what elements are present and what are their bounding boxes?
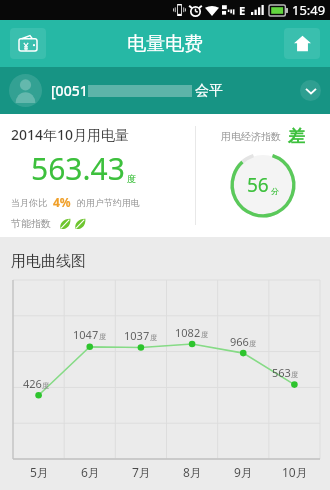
staticText: 1047 [73, 327, 99, 342]
staticText: 563.43 [31, 148, 125, 189]
staticText: 1037 [124, 328, 150, 343]
staticText: 度 [99, 332, 106, 341]
staticText: 7月 [132, 464, 151, 480]
staticText: 1082 [175, 325, 201, 340]
staticText: 差 [288, 126, 305, 147]
staticText: 966 [230, 334, 249, 349]
staticText: 15:49 [292, 1, 326, 19]
staticText: 度 [249, 339, 256, 348]
staticText: 56 [247, 172, 269, 198]
staticText: 的用户节约用电 [77, 197, 140, 208]
staticText: 用电经济指数 [221, 130, 281, 143]
staticText: 6月 [81, 464, 100, 480]
staticText: E [239, 3, 246, 18]
staticText: 8月 [183, 464, 202, 480]
staticText: 分 [271, 186, 279, 196]
button[interactable]: [0051 [0, 67, 330, 114]
staticText: 度 [42, 381, 49, 390]
staticText: 用电曲线图 [11, 252, 86, 271]
staticText: 563 [272, 365, 291, 380]
staticText: 度 [150, 333, 157, 342]
staticText: [0051 [51, 81, 88, 100]
staticText: 会平 [195, 82, 223, 100]
staticText: 当月你比 [11, 197, 47, 208]
staticText: 节能指数 [11, 217, 51, 230]
button[interactable]: Expand account selector [300, 80, 321, 101]
staticText: 5月 [30, 464, 49, 480]
staticText: 426 [23, 376, 42, 391]
staticText: 电量电费 [127, 32, 203, 56]
button[interactable]: Home [284, 28, 320, 59]
button[interactable]: Bills [10, 28, 46, 59]
staticText: 度 [291, 370, 298, 379]
staticText: 10月 [282, 464, 308, 480]
staticText: 4% [53, 194, 71, 210]
staticText: 9月 [234, 464, 253, 480]
staticText: 度 [201, 330, 208, 339]
staticText: 2014年10月用电量 [11, 125, 130, 144]
staticText: 度 [127, 173, 136, 184]
